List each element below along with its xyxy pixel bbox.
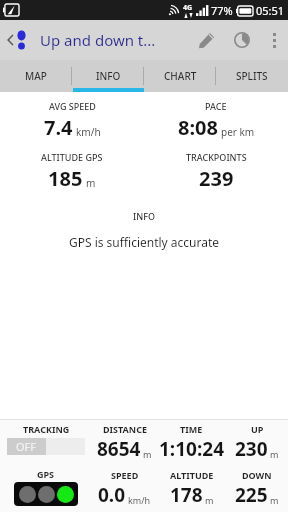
button[interactable]: More options: [260, 20, 288, 60]
button[interactable]: Up and down t...: [40, 30, 188, 50]
staticText: 225: [235, 482, 268, 508]
staticText: 230: [235, 436, 268, 462]
staticText: 0.0: [98, 482, 126, 508]
staticText: m: [205, 494, 214, 506]
button[interactable]: GPS status: [14, 482, 78, 506]
staticText: 77%: [211, 3, 233, 18]
staticText: 185: [48, 165, 83, 192]
staticText: INFO: [0, 210, 288, 222]
staticText: m: [86, 176, 96, 190]
staticText: m: [270, 448, 279, 460]
staticText: CHART: [164, 69, 197, 83]
staticText: per km: [221, 125, 255, 139]
staticText: TIME: [180, 423, 203, 435]
staticText: INFO: [96, 69, 121, 83]
staticText: 178: [170, 482, 203, 508]
button[interactable]: MAP: [0, 60, 72, 92]
staticText: ALTITUDE GPS: [41, 151, 103, 163]
button[interactable]: CHART: [144, 60, 216, 92]
staticText: OFF: [16, 439, 37, 454]
staticText: ALTITUDE: [170, 469, 214, 481]
staticText: MAP: [25, 69, 47, 83]
button[interactable]: OFF: [7, 438, 85, 455]
staticText: 8:08: [178, 114, 218, 141]
button[interactable]: Back: [0, 20, 32, 60]
staticText: AVG SPEED: [49, 100, 96, 112]
staticText: 4G: [183, 3, 193, 13]
staticText: UP: [251, 423, 264, 435]
staticText: GPS is sufficiently accurate: [0, 234, 288, 250]
staticText: 7.4: [44, 114, 73, 141]
button[interactable]: INFO: [72, 60, 144, 92]
staticText: 05:51: [256, 3, 285, 18]
staticText: DISTANCE: [103, 423, 147, 435]
staticText: GPS: [37, 468, 55, 480]
button[interactable]: SPLITS: [216, 60, 288, 92]
staticText: m: [143, 448, 152, 460]
staticText: 8654: [97, 436, 141, 462]
staticText: TRACKING: [23, 423, 70, 435]
staticText: km/h: [76, 125, 101, 139]
staticText: DOWN: [242, 469, 272, 481]
staticText: km/h: [128, 494, 151, 506]
staticText: SPEED: [111, 469, 139, 481]
staticText: m: [270, 494, 279, 506]
staticText: PACE: [205, 100, 227, 112]
staticText: 239: [199, 165, 234, 192]
staticText: TRACKPOINTS: [186, 151, 247, 163]
staticText: 1:10:24: [159, 436, 225, 462]
staticText: SPLITS: [236, 69, 268, 83]
button[interactable]: Statistics: [224, 20, 260, 60]
button[interactable]: Edit: [188, 20, 224, 60]
